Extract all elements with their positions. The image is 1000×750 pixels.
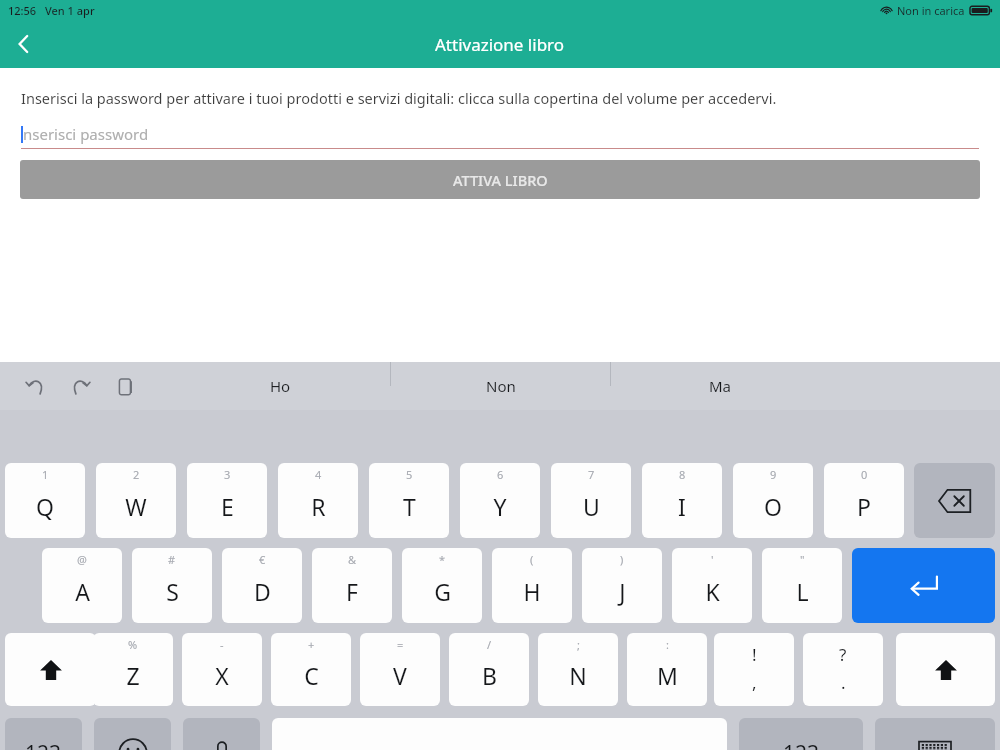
staticText: %: [128, 637, 138, 652]
button[interactable]: 3: [187, 463, 267, 538]
staticText: I: [678, 491, 686, 522]
staticText: 0: [861, 467, 868, 482]
staticText: :: [666, 637, 669, 652]
staticText: X: [215, 660, 229, 691]
button[interactable]: €: [222, 548, 302, 623]
button[interactable]: -: [182, 633, 262, 706]
button[interactable]: Shift: [896, 633, 995, 706]
button[interactable]: Ma: [611, 362, 830, 410]
button[interactable]: +: [271, 633, 351, 706]
staticText: .: [841, 671, 846, 694]
staticText: 8: [679, 467, 686, 482]
staticText: ;: [577, 637, 580, 652]
staticText: @: [77, 552, 87, 567]
staticText: Z: [126, 660, 140, 691]
staticText: Non in carica: [897, 3, 965, 18]
button[interactable]: Emoji: [94, 718, 171, 750]
staticText: Non: [486, 376, 516, 396]
staticText: 5: [406, 467, 413, 482]
button[interactable]: Redo: [63, 369, 97, 403]
button[interactable]: 1: [5, 463, 85, 538]
button[interactable]: ;: [538, 633, 618, 706]
button[interactable]: #: [132, 548, 212, 623]
button[interactable]: Paste: [108, 369, 142, 403]
staticText: M: [657, 660, 678, 691]
button[interactable]: 2: [96, 463, 176, 538]
staticText: P: [857, 491, 871, 522]
staticText: 123: [783, 739, 820, 750]
staticText: -: [220, 637, 224, 652]
staticText: U: [583, 491, 600, 522]
staticText: 123: [25, 739, 62, 750]
staticText: ': [711, 552, 714, 567]
staticText: 2: [133, 467, 140, 482]
staticText: 12:56: [8, 3, 37, 18]
staticText: 9: [770, 467, 777, 482]
button[interactable]: 0: [824, 463, 904, 538]
button[interactable]: ATTIVA LIBRO: [20, 160, 980, 199]
button[interactable]: (: [492, 548, 572, 623]
button[interactable]: Hide keyboard: [875, 718, 995, 750]
staticText: #: [168, 552, 176, 567]
staticText: ?: [839, 643, 847, 666]
staticText: Ho: [270, 376, 291, 396]
staticText: *: [439, 552, 446, 567]
button[interactable]: 5: [369, 463, 449, 538]
button[interactable]: 8: [642, 463, 722, 538]
button[interactable]: =: [360, 633, 440, 706]
button[interactable]: Shift: [5, 633, 96, 706]
button[interactable]: /: [449, 633, 529, 706]
button[interactable]: ': [672, 548, 752, 623]
button[interactable]: 4: [278, 463, 358, 538]
staticText: K: [705, 576, 720, 607]
staticText: 4: [315, 467, 322, 482]
button[interactable]: Non: [391, 362, 610, 410]
button[interactable]: 6: [460, 463, 540, 538]
staticText: D: [254, 576, 271, 607]
staticText: Inserisci la password per attivare i tuo…: [21, 88, 777, 108]
staticText: Ven 1 apr: [45, 3, 95, 18]
staticText: S: [166, 576, 179, 607]
staticText: =: [397, 637, 404, 652]
staticText: Attivazione libro: [435, 33, 565, 56]
staticText: ,: [752, 671, 757, 694]
button[interactable]: @: [42, 548, 122, 623]
staticText: C: [304, 660, 319, 691]
button[interactable]: 9: [733, 463, 813, 538]
button[interactable]: %: [93, 633, 173, 706]
staticText: ATTIVA LIBRO: [453, 170, 548, 190]
staticText: L: [796, 576, 809, 607]
button[interactable]: Back: [0, 20, 48, 68]
staticText: W: [125, 491, 147, 522]
staticText: G: [434, 576, 451, 607]
button[interactable]: !: [714, 633, 794, 706]
button[interactable]: nserisci password: [21, 120, 979, 148]
button[interactable]: Numbers: [5, 718, 82, 750]
button[interactable]: 7: [551, 463, 631, 538]
button[interactable]: ): [582, 548, 662, 623]
button[interactable]: Undo: [18, 369, 52, 403]
staticText: R: [311, 491, 326, 522]
staticText: Y: [493, 491, 507, 522]
staticText: F: [346, 576, 358, 607]
staticText: nserisci password: [23, 124, 149, 144]
button[interactable]: &: [312, 548, 392, 623]
button[interactable]: *: [402, 548, 482, 623]
staticText: O: [764, 491, 782, 522]
staticText: (: [530, 552, 534, 567]
button[interactable]: :: [627, 633, 707, 706]
staticText: Q: [36, 491, 54, 522]
button[interactable]: Voice input: [183, 718, 260, 750]
button[interactable]: Ho: [170, 362, 390, 410]
button[interactable]: Numbers: [739, 718, 863, 750]
staticText: &: [348, 552, 357, 567]
button[interactable]: ": [762, 548, 842, 623]
staticText: A: [75, 576, 90, 607]
staticText: N: [569, 660, 587, 691]
button[interactable]: Enter: [852, 548, 995, 623]
button[interactable]: Backspace: [914, 463, 995, 538]
staticText: V: [393, 660, 407, 691]
button[interactable]: ?: [803, 633, 883, 706]
staticText: J: [619, 576, 626, 607]
